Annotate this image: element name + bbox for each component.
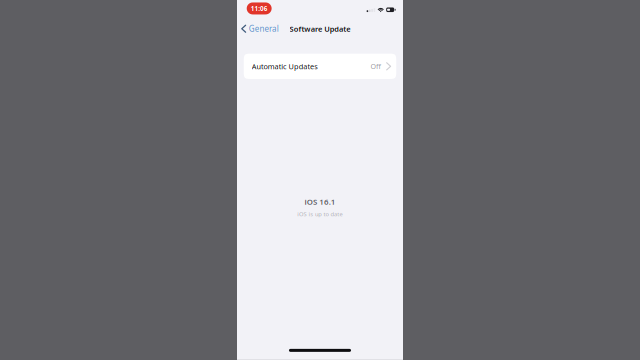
staticText: General — [265, 55, 336, 81]
staticText: Software Update — [361, 56, 505, 80]
button[interactable]: General — [237, 48, 344, 88]
staticText: 11:06 — [269, 10, 309, 30]
staticText: Automatic Updates — [272, 145, 428, 169]
button[interactable]: Automatic Updates — [253, 127, 614, 187]
